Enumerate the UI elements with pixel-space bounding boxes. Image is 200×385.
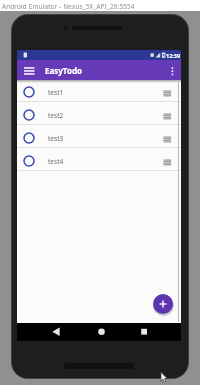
button[interactable] bbox=[165, 62, 179, 78]
button[interactable] bbox=[129, 323, 157, 341]
button[interactable] bbox=[42, 323, 70, 341]
button[interactable]: test4 bbox=[17, 147, 181, 170]
button[interactable] bbox=[86, 323, 114, 341]
button[interactable]: test2 bbox=[17, 101, 181, 124]
staticText: test3 bbox=[48, 134, 64, 143]
staticText: test4 bbox=[48, 157, 64, 166]
button[interactable]: test3 bbox=[17, 124, 181, 147]
staticText: test1 bbox=[48, 88, 64, 97]
button[interactable]: test1 bbox=[17, 80, 181, 101]
staticText: 12:39 bbox=[166, 52, 181, 59]
button[interactable] bbox=[153, 294, 173, 314]
staticText: Android Emulator - Nexus_5X_API_26:5554 bbox=[2, 2, 135, 10]
staticText: EasyTodo bbox=[45, 65, 82, 76]
staticText: test2 bbox=[48, 111, 64, 120]
